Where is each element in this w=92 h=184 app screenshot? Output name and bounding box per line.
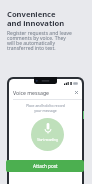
button[interactable]: Start recording (31, 118, 64, 151)
staticText: Convenience and innovation (7, 9, 65, 28)
button[interactable]: Close (74, 90, 79, 95)
staticText: Attach post (33, 163, 58, 169)
button[interactable]: Attach post (6, 160, 84, 172)
staticText: Voice message (13, 89, 50, 96)
staticText: Register requests and leave comments by … (7, 30, 72, 52)
staticText: Start recording (31, 138, 64, 142)
staticText: Place and hold to record your message (9, 103, 82, 113)
